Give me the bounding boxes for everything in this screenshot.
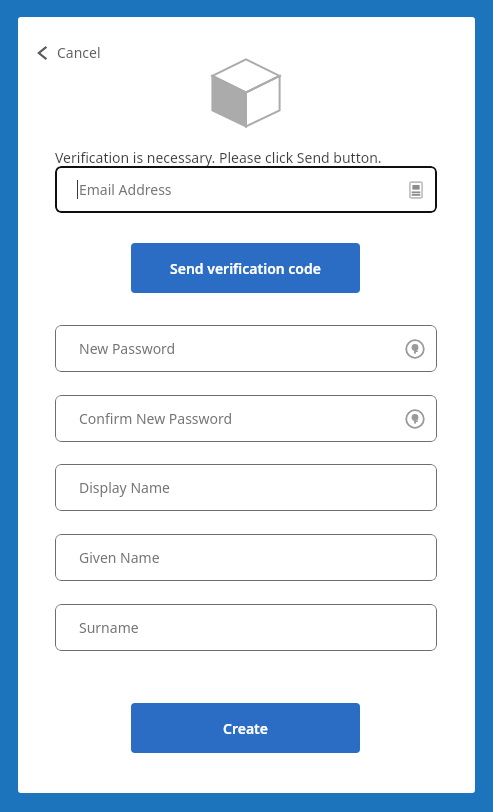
staticText: Surname (79, 618, 139, 637)
staticText: Create (223, 719, 268, 738)
button[interactable]: Email Address (55, 166, 437, 213)
staticText: Given Name (79, 548, 160, 567)
button[interactable]: Given Name (55, 534, 437, 581)
button[interactable]: Confirm New Password (55, 395, 437, 442)
button[interactable]: Send verification code (131, 243, 360, 293)
button[interactable]: New Password (55, 325, 437, 372)
button[interactable]: Display Name (55, 464, 437, 511)
staticText: Send verification code (170, 259, 321, 278)
button[interactable]: Autofill contact (407, 181, 425, 199)
staticText: Verification is necessary. Please click … (55, 148, 382, 167)
staticText: Display Name (79, 478, 170, 497)
button[interactable]: Surname (55, 604, 437, 651)
button[interactable]: Suggest password (405, 409, 425, 429)
staticText: Email Address (79, 180, 172, 199)
staticText: Confirm New Password (79, 409, 233, 428)
button[interactable]: Cancel (32, 39, 105, 66)
button[interactable]: Suggest password (405, 339, 425, 359)
button[interactable]: Create (131, 703, 360, 753)
staticText: New Password (79, 339, 176, 358)
staticText: Cancel (57, 43, 101, 62)
